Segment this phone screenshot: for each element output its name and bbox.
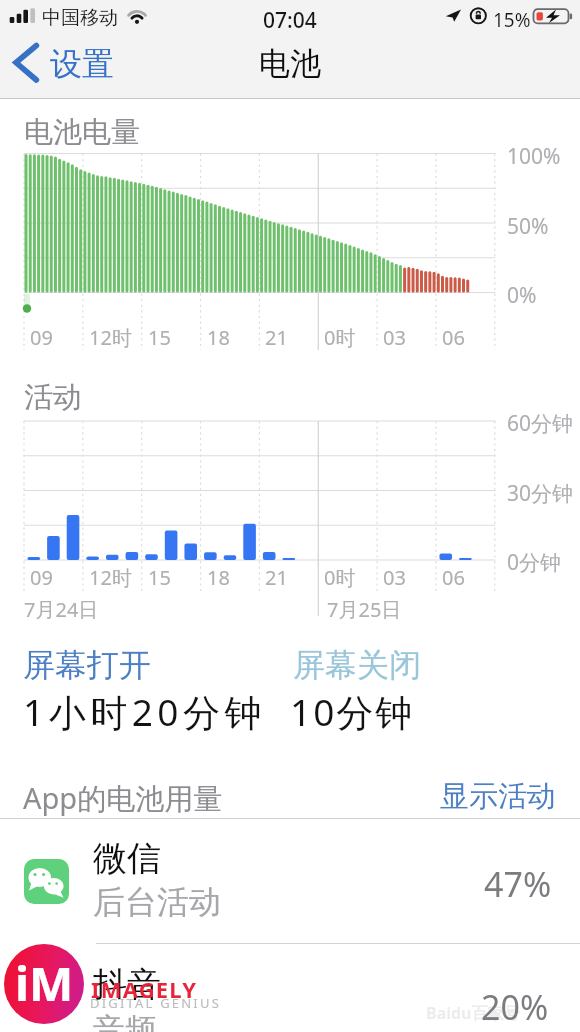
- staticText: 09: [30, 564, 53, 591]
- staticText: 活动: [24, 379, 82, 416]
- staticText: 21: [265, 564, 288, 591]
- staticText: 7月25日: [327, 596, 402, 623]
- staticText: 屏幕关闭: [293, 645, 421, 685]
- staticText: 0分钟: [507, 548, 562, 577]
- staticText: 07:04: [263, 6, 317, 35]
- staticText: DIGITAL GENIUS: [90, 994, 222, 1012]
- staticText: App的电池用量: [23, 778, 223, 818]
- staticText: IMAGELY: [91, 974, 198, 1004]
- staticText: 1小时20分钟: [23, 686, 266, 737]
- staticText: 03: [383, 564, 406, 591]
- staticText: 10分钟: [290, 686, 415, 737]
- staticText: 电池电量: [24, 114, 140, 151]
- staticText: 微信: [93, 837, 161, 880]
- staticText: 12时: [89, 324, 132, 351]
- staticText: 18: [207, 564, 230, 591]
- staticText: 20%: [481, 984, 549, 1030]
- button[interactable]: 返回设置: [6, 36, 124, 98]
- staticText: 中国移动: [42, 6, 118, 30]
- staticText: 15%: [493, 7, 531, 33]
- staticText: 0时: [324, 324, 356, 351]
- staticText: 03: [383, 324, 406, 351]
- staticText: 50%: [507, 212, 549, 241]
- button[interactable]: 抖音: [0, 944, 580, 1032]
- button[interactable]: 微信: [0, 819, 580, 943]
- staticText: 屏幕打开: [23, 645, 151, 685]
- staticText: 音频: [93, 1010, 157, 1032]
- staticText: 18: [207, 324, 230, 351]
- staticText: 0%: [507, 281, 537, 310]
- staticText: 后台活动: [93, 882, 221, 922]
- staticText: iM: [15, 951, 74, 1015]
- staticText: 电池: [259, 44, 321, 83]
- staticText: 100%: [507, 142, 561, 171]
- staticText: 12时: [89, 564, 132, 591]
- staticText: 60分钟: [507, 409, 574, 438]
- staticText: 21: [265, 324, 288, 351]
- staticText: 06: [442, 564, 465, 591]
- staticText: 0时: [324, 564, 356, 591]
- staticText: 06: [442, 324, 465, 351]
- staticText: 显示活动: [440, 778, 556, 815]
- staticText: Baidu百家号: [426, 1002, 520, 1024]
- staticText: 7月24日: [24, 596, 99, 623]
- staticText: 15: [148, 564, 171, 591]
- staticText: 47%: [484, 861, 552, 907]
- button[interactable]: 显示活动: [432, 770, 564, 823]
- staticText: 30分钟: [507, 479, 574, 508]
- staticText: 设置: [50, 44, 114, 84]
- staticText: 15: [148, 324, 171, 351]
- staticText: 09: [30, 324, 53, 351]
- staticText: 抖音: [93, 963, 161, 1006]
